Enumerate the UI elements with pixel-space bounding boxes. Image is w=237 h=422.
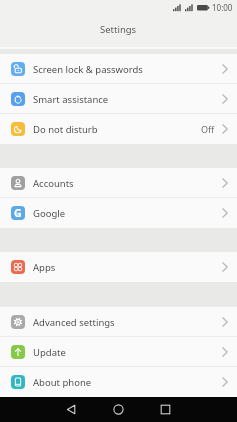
staticText: Do not disturb [33,123,98,136]
staticText: Update [33,346,66,359]
button[interactable]: Apps [0,252,237,282]
staticText: G [14,206,22,220]
button[interactable]: About phone [0,367,237,397]
button[interactable] [142,397,189,422]
staticText: Apps [33,261,56,274]
button[interactable]: Accounts [0,168,237,198]
staticText: 10:00 [212,2,233,13]
button[interactable]: Smart assistance [0,84,237,114]
staticText: Accounts [33,177,74,190]
button[interactable]: Update [0,337,237,367]
button[interactable] [48,397,95,422]
staticText: Settings [100,23,137,36]
staticText: Off [201,123,215,135]
button[interactable] [95,397,142,422]
button[interactable]: Screen lock & passwords [0,54,237,84]
staticText: Google [33,207,66,220]
button[interactable]: G [0,198,237,228]
staticText: Advanced settings [33,316,115,329]
button[interactable]: Advanced settings [0,307,237,337]
staticText: About phone [33,376,92,389]
staticText: Screen lock & passwords [33,63,143,76]
staticText: Smart assistance [33,93,109,106]
button[interactable]: Do not disturb [0,114,237,144]
